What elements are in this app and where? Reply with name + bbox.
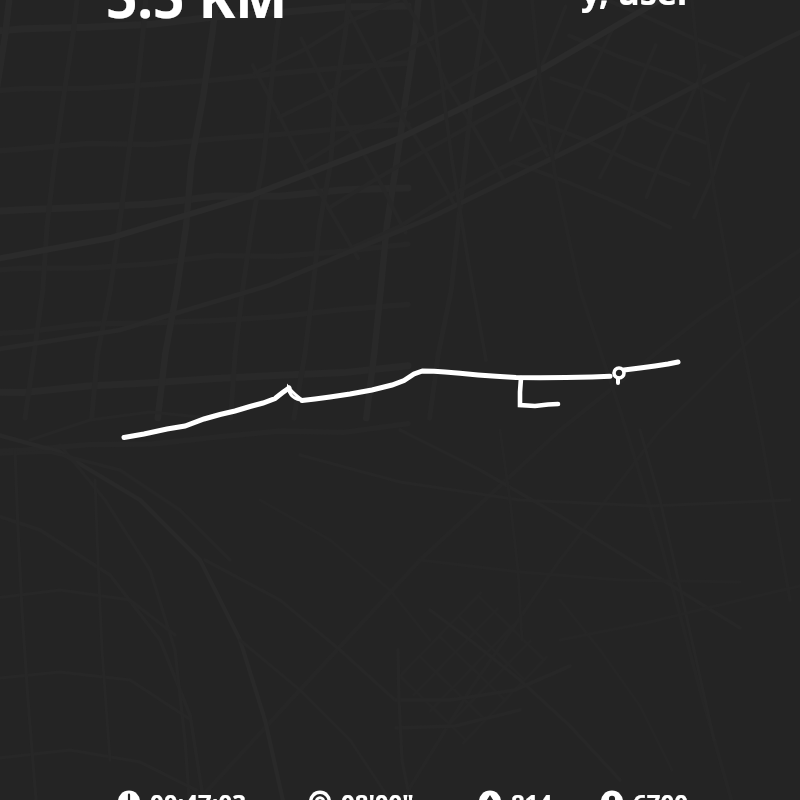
staticText: 814 (511, 786, 553, 800)
staticText: y, user (581, 0, 693, 15)
button[interactable]: Steps (597, 786, 693, 800)
button[interactable]: Pace (305, 786, 427, 800)
button[interactable]: Duration (114, 786, 262, 800)
staticText: 5.5 KM (106, 0, 288, 34)
button[interactable]: Calories (475, 786, 558, 800)
staticText: 00:47:03 (150, 786, 246, 800)
staticText: 6700 (633, 786, 688, 800)
staticText: 08'00" (341, 786, 414, 800)
button[interactable]: Route map (0, 0, 800, 800)
